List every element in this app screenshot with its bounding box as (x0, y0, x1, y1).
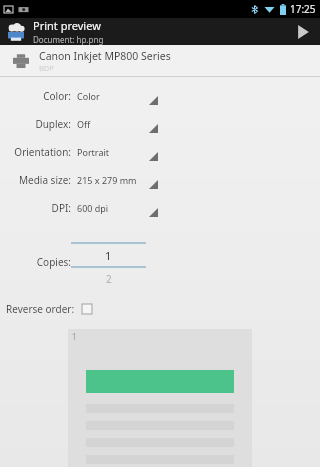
staticText: Orientation: (14, 145, 71, 159)
staticText: Portrait (77, 146, 110, 158)
staticText: BDP (39, 63, 54, 73)
staticText: 2 (106, 272, 112, 286)
button[interactable]: Duplex: (0, 110, 320, 138)
staticText: Off (77, 118, 91, 130)
button[interactable]: 1 (71, 242, 146, 290)
staticText: Media size: (18, 173, 71, 187)
staticText: DPI: (51, 201, 71, 215)
staticText: Reverse order: (6, 302, 75, 316)
button[interactable]: Orientation: (0, 138, 320, 166)
staticText: Duplex: (35, 117, 71, 131)
button[interactable]: Media size: (0, 166, 320, 194)
button[interactable]: Reverse order: (6, 299, 92, 319)
staticText: 1 (72, 331, 77, 342)
button[interactable]: Print (286, 18, 320, 45)
button[interactable]: 1 (68, 329, 252, 467)
staticText: Copies: (0, 255, 71, 269)
staticText: 215 x 279 mm (77, 174, 137, 186)
staticText: 600 dpi (77, 202, 109, 214)
button[interactable]: Canon Inkjet MP800 Series (0, 45, 320, 76)
button[interactable]: Color: (0, 82, 320, 110)
staticText: Color (77, 90, 100, 102)
staticText: Canon Inkjet MP800 Series (39, 49, 171, 63)
staticText: Document: hp.png (33, 34, 104, 45)
staticText: Print preview (33, 18, 101, 33)
staticText: 1 (105, 248, 112, 263)
staticText: 17:25 (290, 2, 316, 16)
button[interactable]: DPI: (0, 194, 320, 222)
staticText: Color: (43, 89, 71, 103)
